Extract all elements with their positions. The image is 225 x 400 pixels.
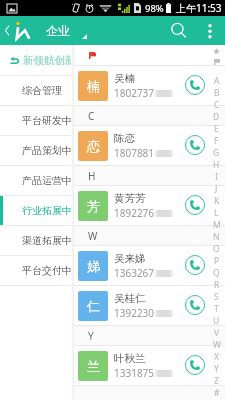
staticText: A bbox=[214, 75, 220, 87]
staticText: 1331875 bbox=[114, 366, 155, 380]
staticText: I bbox=[215, 171, 218, 183]
staticText: 娣 bbox=[87, 258, 100, 274]
button[interactable]: More options bbox=[195, 16, 225, 45]
staticText: 98% bbox=[145, 2, 164, 15]
staticText: T bbox=[214, 303, 219, 315]
button[interactable]: Call 吴来娣 bbox=[184, 245, 206, 284]
staticText: 仁 bbox=[87, 298, 100, 314]
staticText: Y bbox=[214, 363, 219, 375]
button[interactable]: 渠道拓展中心 bbox=[0, 226, 71, 255]
staticText: K bbox=[214, 195, 220, 207]
staticText: M bbox=[213, 219, 221, 231]
button[interactable]: 恋 bbox=[74, 126, 225, 165]
staticText: 1392230 bbox=[114, 306, 155, 320]
staticText: 1892276 bbox=[114, 206, 155, 220]
staticText: F bbox=[214, 135, 219, 147]
button[interactable]: 楠 bbox=[74, 66, 225, 105]
staticText: U bbox=[213, 315, 220, 327]
staticText: J bbox=[215, 183, 218, 195]
staticText: L bbox=[214, 207, 219, 219]
button[interactable]: 产品运营中心 bbox=[0, 166, 71, 195]
staticText: P bbox=[214, 255, 220, 267]
button[interactable]: 仁 bbox=[74, 286, 225, 325]
button[interactable]: 新领航创新 bbox=[0, 45, 71, 75]
button[interactable]: Call 吴桂仁 bbox=[184, 285, 206, 324]
staticText: O bbox=[213, 243, 220, 255]
staticText: H bbox=[88, 169, 96, 183]
staticText: 行业拓展中心 bbox=[22, 204, 71, 217]
button[interactable]: 兰 bbox=[74, 346, 225, 385]
staticText: 产品运营中心 bbox=[22, 174, 71, 187]
button[interactable]: Call 吴楠 bbox=[184, 65, 206, 104]
button[interactable]: 综合管理 bbox=[0, 76, 71, 105]
staticText: 上午11:53 bbox=[176, 1, 222, 15]
staticText: 吴桂仁 bbox=[114, 292, 146, 305]
button[interactable]: 行业拓展中心 bbox=[0, 196, 71, 225]
staticText: # bbox=[214, 387, 220, 399]
staticText: 1363267 bbox=[114, 266, 155, 280]
staticText: 平台交付中心 bbox=[22, 264, 71, 277]
staticText: G bbox=[213, 147, 220, 159]
staticText: N bbox=[213, 231, 220, 243]
staticText: 综合管理 bbox=[22, 84, 62, 97]
staticText: 恋 bbox=[87, 138, 100, 154]
staticText: 吴楠 bbox=[114, 72, 135, 85]
staticText: R bbox=[214, 279, 220, 291]
staticText: 陈恋 bbox=[114, 132, 135, 145]
staticText: B bbox=[214, 87, 220, 99]
button[interactable]: 芳 bbox=[74, 186, 225, 225]
staticText: 产品策划中心 bbox=[22, 144, 71, 157]
staticText: H bbox=[213, 159, 220, 171]
staticText: W bbox=[88, 229, 98, 243]
staticText: Q bbox=[213, 267, 220, 279]
button[interactable]: 平台研发中心 bbox=[0, 106, 71, 135]
staticText: S bbox=[214, 291, 219, 303]
button[interactable]: Call 黄芳芳 bbox=[184, 185, 206, 224]
staticText: 楠 bbox=[87, 78, 100, 94]
staticText: V bbox=[214, 327, 220, 339]
staticText: C bbox=[214, 99, 220, 111]
button[interactable]: Back bbox=[0, 16, 14, 45]
staticText: 黄芳芳 bbox=[114, 192, 146, 205]
staticText: Y bbox=[88, 329, 94, 343]
staticText: D bbox=[213, 111, 220, 123]
staticText: W bbox=[213, 339, 221, 351]
staticText: C bbox=[88, 109, 95, 123]
staticText: Z bbox=[214, 375, 219, 387]
staticText: 吴来娣 bbox=[114, 252, 146, 265]
button[interactable]: Search bbox=[163, 16, 195, 45]
staticText: X bbox=[214, 351, 219, 363]
staticText: 平台研发中心 bbox=[22, 114, 71, 127]
button[interactable]: 产品策划中心 bbox=[0, 136, 71, 165]
button[interactable]: Call 陈恋 bbox=[184, 125, 206, 164]
staticText: 1802737 bbox=[114, 86, 155, 100]
staticText: 企业 bbox=[46, 23, 70, 38]
staticText: 新领航创新 bbox=[23, 54, 71, 67]
staticText: 兰 bbox=[87, 358, 100, 374]
button[interactable]: 娣 bbox=[74, 246, 225, 285]
staticText: 芳 bbox=[87, 198, 100, 214]
staticText: 1807881 bbox=[114, 146, 155, 160]
staticText: 叶秋兰 bbox=[114, 352, 146, 365]
button[interactable]: 平台交付中心 bbox=[0, 256, 71, 285]
staticText: 渠道拓展中心 bbox=[22, 234, 71, 247]
button[interactable]: Call 叶秋兰 bbox=[184, 345, 206, 384]
staticText: E bbox=[214, 123, 219, 135]
